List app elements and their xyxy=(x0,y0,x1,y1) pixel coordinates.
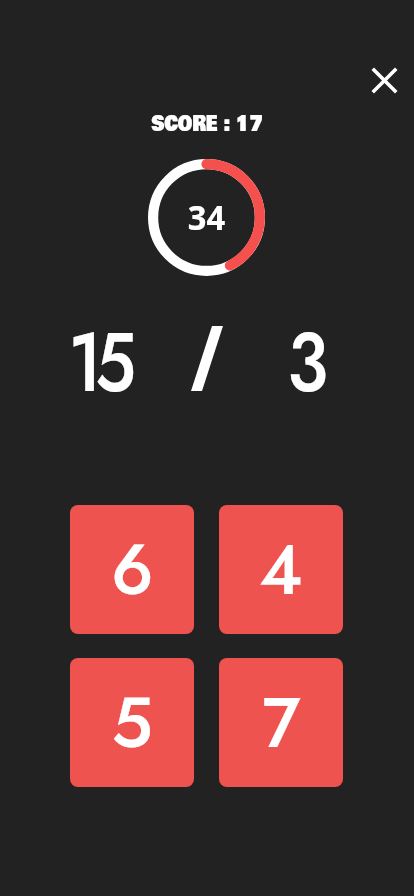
staticText: SCORE : 17 xyxy=(151,107,263,140)
staticText: 34 xyxy=(188,194,225,240)
button[interactable]: 5 xyxy=(70,658,194,787)
button[interactable]: 6 xyxy=(70,505,194,634)
staticText: 5 xyxy=(111,673,153,773)
staticText: 3 xyxy=(287,303,329,421)
button[interactable]: 4 xyxy=(219,505,343,634)
staticText: 1 xyxy=(68,303,103,421)
button[interactable]: 7 xyxy=(219,658,343,787)
staticText: 6 xyxy=(111,520,154,620)
staticText: 4 xyxy=(259,520,303,620)
staticText: 7 xyxy=(262,673,301,773)
button[interactable]: Close xyxy=(361,57,407,103)
staticText: 5 xyxy=(95,303,136,421)
